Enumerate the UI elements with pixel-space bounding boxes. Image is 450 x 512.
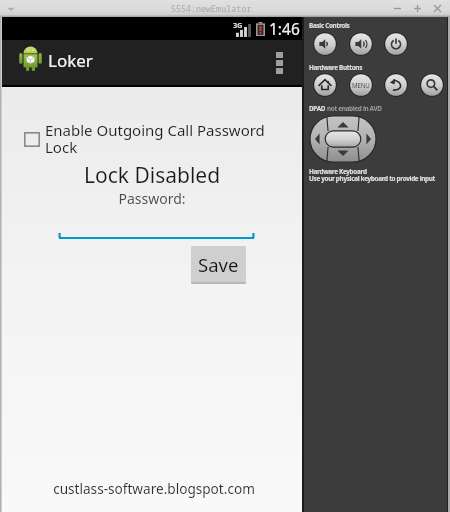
button[interactable]: Back [384, 73, 408, 97]
staticText: 1:46 [269, 18, 300, 39]
staticText: Enable Outgoing Call Password Lock [45, 120, 272, 158]
button[interactable]: Maximize [413, 4, 422, 13]
button[interactable]: Volume up [349, 32, 373, 56]
staticText: Lock Disabled [2, 161, 302, 190]
staticText: Use your physical keyboard to provide in… [309, 174, 436, 183]
button[interactable]: Minimize [393, 4, 402, 13]
button[interactable]: Loker [10, 40, 110, 85]
staticText: DPAD [309, 104, 327, 113]
staticText: Loker [48, 49, 93, 72]
staticText: Hardware Buttons [309, 63, 363, 72]
button[interactable]: Password field [58, 229, 255, 243]
button[interactable]: Search [420, 73, 444, 97]
button[interactable]: Menu [349, 73, 373, 97]
button[interactable]: Close [433, 4, 442, 13]
staticText: Hardware Keyboard [309, 167, 367, 176]
button[interactable]: Home [313, 73, 337, 97]
button[interactable]: Power [384, 32, 408, 56]
button[interactable]: D-pad [310, 116, 376, 162]
staticText: not enabled in AVD [327, 104, 382, 113]
staticText: Save [198, 252, 239, 277]
staticText: 5554:newEmulator [171, 3, 252, 14]
staticText: Basic Controls [309, 21, 350, 30]
staticText: custlass-software.blogspot.com [4, 479, 304, 498]
staticText: 3G [233, 20, 243, 30]
staticText: Password: [2, 189, 302, 208]
button[interactable]: Enable Outgoing Call Password Lock [22, 120, 272, 158]
button[interactable]: More options [266, 40, 302, 85]
button[interactable]: Volume down [313, 32, 337, 56]
staticText: MENU [352, 81, 370, 89]
button[interactable]: Save [191, 246, 246, 284]
